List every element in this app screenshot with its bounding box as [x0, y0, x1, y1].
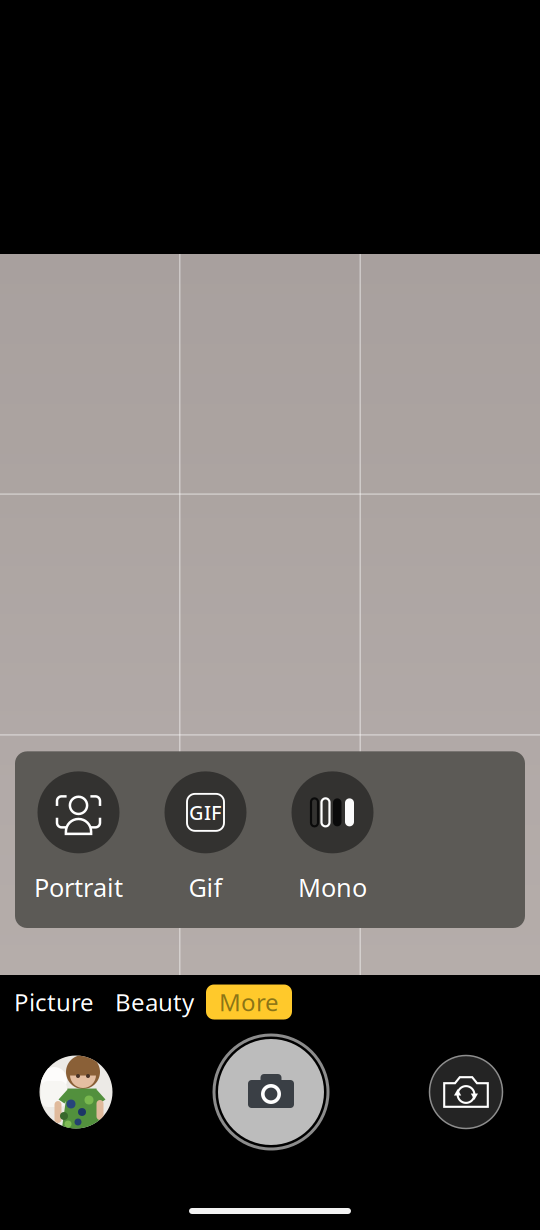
- staticText: Gif: [188, 870, 222, 904]
- button[interactable]: Switch camera: [422, 1048, 510, 1136]
- button[interactable]: Portrait: [15, 771, 142, 904]
- button[interactable]: Gallery: [32, 1048, 120, 1136]
- staticText: Portrait: [34, 870, 123, 904]
- staticText: Mono: [298, 870, 367, 904]
- button[interactable]: Take photo: [211, 1032, 331, 1152]
- staticText: More: [219, 986, 279, 1018]
- staticText: Beauty: [115, 986, 194, 1018]
- staticText: GIF: [189, 799, 222, 826]
- button[interactable]: Picture: [8, 984, 100, 1020]
- button[interactable]: Mono: [269, 771, 396, 904]
- button[interactable]: Beauty: [109, 984, 200, 1020]
- button[interactable]: GIF: [142, 771, 269, 904]
- button[interactable]: More: [206, 984, 292, 1019]
- staticText: Picture: [14, 986, 94, 1018]
